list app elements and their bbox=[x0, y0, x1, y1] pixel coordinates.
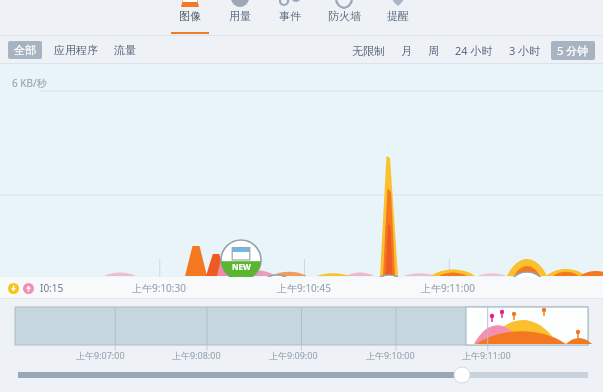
staticText: NEW bbox=[268, 296, 287, 307]
staticText: 图像 bbox=[179, 9, 201, 23]
button[interactable]: 防火墙 bbox=[315, 0, 373, 36]
staticText: 上午9:10:00 bbox=[366, 349, 415, 361]
staticText: NEW bbox=[518, 293, 537, 304]
button[interactable]: App event marker bbox=[253, 271, 301, 319]
button[interactable]: App event marker bbox=[503, 268, 551, 316]
staticText: 上午9:10:30 bbox=[132, 281, 186, 295]
staticText: 无限制 bbox=[352, 44, 385, 58]
button[interactable]: 流量 bbox=[112, 41, 138, 59]
staticText: 提醒 bbox=[387, 9, 409, 23]
staticText: I0:15 bbox=[40, 281, 64, 295]
staticText: 上午9:10:45 bbox=[277, 281, 331, 295]
staticText: 6 KB/秒 bbox=[12, 76, 47, 90]
button[interactable]: App event marker bbox=[365, 271, 413, 319]
button[interactable]: 用量 bbox=[215, 0, 265, 36]
button[interactable]: 月 bbox=[399, 42, 414, 60]
staticText: 5 分钟 bbox=[557, 43, 589, 58]
button[interactable]: 事件 bbox=[265, 0, 315, 36]
button[interactable]: 3 小时 bbox=[507, 41, 543, 60]
button[interactable]: 无限制 bbox=[350, 42, 387, 60]
button[interactable]: 应用程序 bbox=[52, 41, 100, 59]
button[interactable]: App event marker bbox=[172, 276, 220, 324]
button[interactable]: 提醒 bbox=[373, 0, 423, 36]
staticText: 流量 bbox=[114, 43, 136, 57]
staticText: 上午9:08:00 bbox=[172, 349, 221, 361]
staticText: 事件 bbox=[279, 9, 301, 23]
button[interactable]: 全部 bbox=[8, 41, 42, 59]
staticText: 周 bbox=[428, 44, 439, 58]
staticText: 全部 bbox=[14, 43, 36, 57]
button[interactable]: 24 小时 bbox=[453, 41, 495, 60]
staticText: 用量 bbox=[229, 9, 251, 23]
staticText: 月 bbox=[401, 44, 412, 58]
button[interactable]: App event marker bbox=[217, 236, 265, 284]
staticText: 上午9:11:00 bbox=[462, 349, 511, 361]
button[interactable]: 图像 bbox=[165, 0, 215, 36]
staticText: 上午9:11:00 bbox=[421, 281, 475, 295]
staticText: 防火墙 bbox=[328, 9, 361, 23]
staticText: 上午9:07:00 bbox=[76, 349, 125, 361]
staticText: NEW bbox=[187, 301, 206, 312]
staticText: 3 小时 bbox=[509, 43, 541, 58]
button[interactable]: 周 bbox=[426, 42, 441, 60]
staticText: NEW bbox=[232, 261, 251, 272]
staticText: 应用程序 bbox=[54, 43, 98, 57]
staticText: 24 小时 bbox=[455, 43, 493, 58]
button[interactable]: 5 分钟 bbox=[551, 41, 595, 60]
button[interactable]: Timeline scrubber bbox=[452, 367, 472, 387]
staticText: 上午9:09:00 bbox=[269, 349, 318, 361]
staticText: NEW bbox=[380, 296, 399, 307]
